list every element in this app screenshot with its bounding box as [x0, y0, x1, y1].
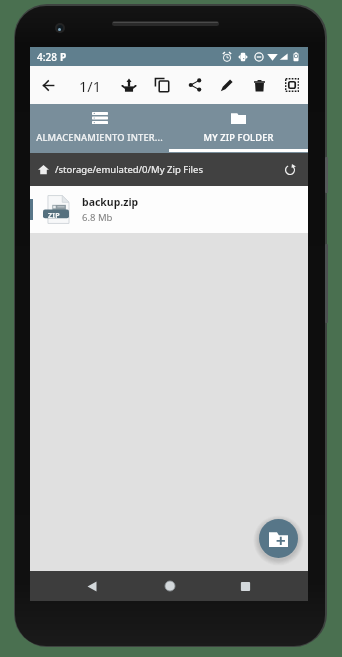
button[interactable]: Rename	[211, 66, 243, 104]
button[interactable]: ZIP	[30, 186, 308, 233]
staticText: P	[60, 50, 67, 64]
button[interactable]: Refresh	[278, 158, 302, 182]
staticText: MY ZIP FOLDER	[203, 131, 274, 144]
staticText: backup.zip	[82, 195, 139, 209]
staticText: 4:28	[37, 50, 57, 64]
button[interactable]: Home	[155, 571, 185, 601]
staticText: ZIP	[48, 211, 60, 221]
button[interactable]: Select all	[276, 66, 308, 104]
button[interactable]: Extract	[113, 66, 145, 104]
button[interactable]: Recents	[230, 571, 260, 601]
staticText: ALMACENAMIENTO INTER...	[36, 131, 163, 144]
staticText: 1/1	[79, 76, 101, 96]
button[interactable]: Copy	[146, 66, 178, 104]
button[interactable]: /storage/emulated/0/My Zip Files	[30, 153, 308, 186]
button[interactable]: Share	[179, 66, 211, 104]
button[interactable]: Delete	[243, 66, 275, 104]
button[interactable]: ALMACENAMIENTO INTER...	[30, 104, 169, 153]
button[interactable]: Back	[77, 571, 107, 601]
button[interactable]: Back	[32, 66, 64, 104]
staticText: /storage/emulated/0/My Zip Files	[55, 163, 203, 176]
button[interactable]: New folder	[259, 519, 298, 558]
button[interactable]: MY ZIP FOLDER	[169, 104, 308, 153]
staticText: 6.8 Mb	[82, 211, 113, 224]
